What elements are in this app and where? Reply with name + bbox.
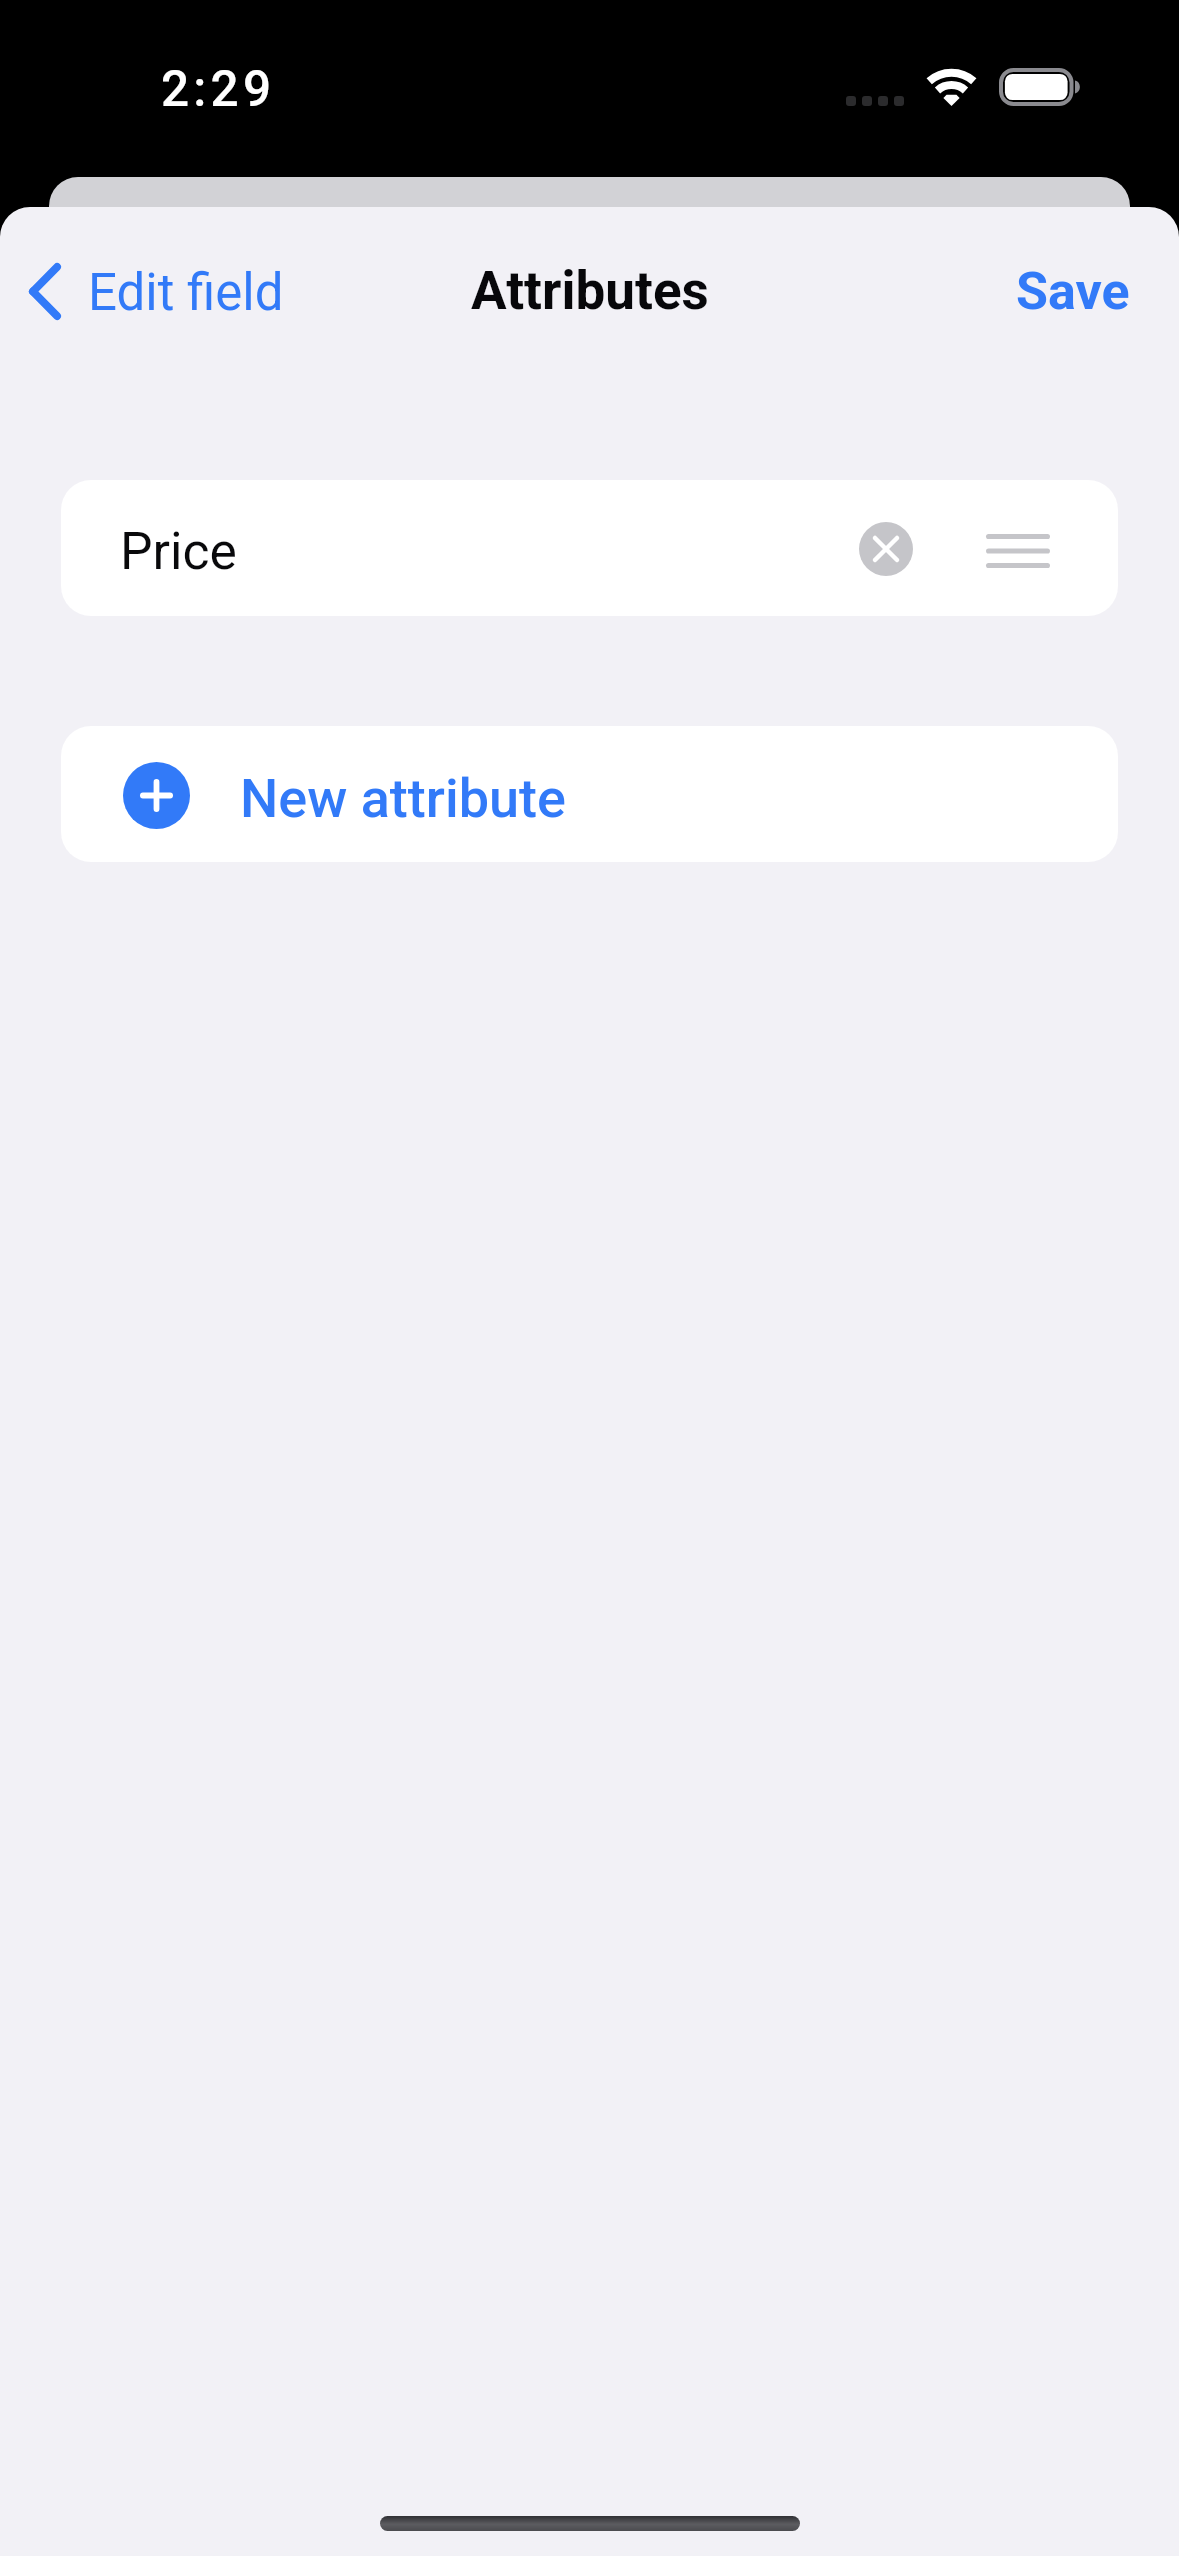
button[interactable]: Save [982,243,1179,340]
staticText: Save [1016,261,1130,322]
staticText: Edit field [88,263,284,323]
button[interactable]: Clear text [859,522,913,576]
staticText: 2:29 [161,60,276,118]
button[interactable]: New attribute [61,726,1118,862]
staticText: Price [120,521,237,581]
button[interactable]: Price [61,480,1118,616]
staticText: New attribute [240,767,566,830]
button[interactable]: Reorder [944,497,1092,605]
staticText: Attributes [471,260,709,322]
button[interactable]: Edit field [0,245,314,337]
